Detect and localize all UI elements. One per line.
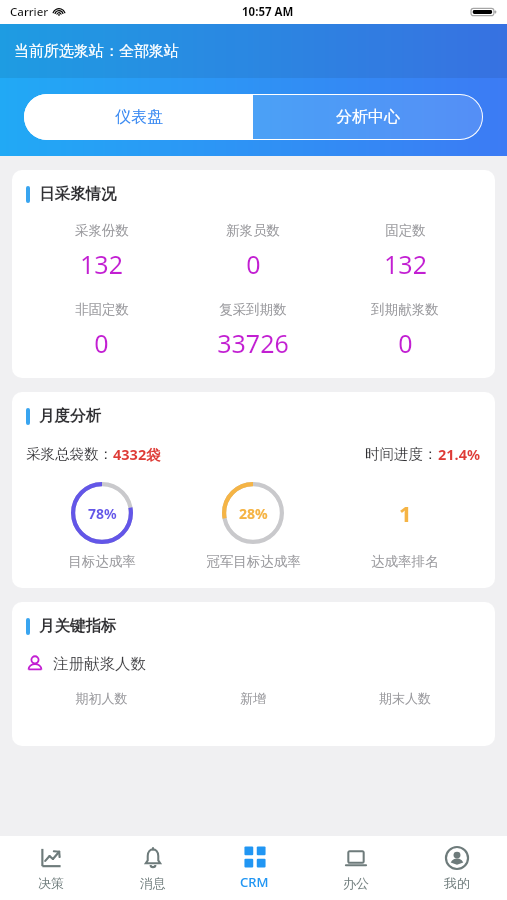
staticText: 仪表盘 [115,107,163,127]
staticText: 办公 [343,875,369,891]
staticText: Carrier [10,4,49,20]
staticText: 132 [80,247,123,281]
staticText: 期末人数 [329,690,481,706]
button[interactable]: 仪表盘 [24,94,253,140]
staticText: 10:57 AM [242,4,294,20]
staticText: 0 [398,326,413,360]
staticText: 非固定数 [75,301,129,318]
staticText: 达成率排名 [371,553,439,570]
button[interactable]: 决策 [0,836,102,900]
staticText: 1 [399,498,412,528]
staticText: 消息 [140,875,166,891]
button[interactable]: 分析中心 [253,94,483,140]
staticText: 0 [246,247,261,281]
staticText: 采浆总袋数： [26,445,113,463]
staticText: 0 [94,326,109,360]
staticText: 月度分析 [39,406,101,426]
staticText: 采浆份数 [75,222,129,239]
staticText: 时间进度： [365,445,438,463]
staticText: 21.4% [438,444,481,464]
staticText: 决策 [38,875,64,891]
button[interactable]: CRM [204,836,305,900]
staticText: 注册献浆人数 [53,654,146,674]
staticText: 复采到期数 [219,301,287,318]
staticText: 当前所选浆站：全部浆站 [14,42,179,61]
staticText: 期初人数 [26,690,177,706]
staticText: 日采浆情况 [39,184,117,204]
button[interactable]: 办公 [305,836,406,900]
staticText: 新浆员数 [226,222,280,239]
staticText: 月关键指标 [39,616,117,636]
staticText: 28% [239,504,268,523]
staticText: 分析中心 [336,107,400,127]
staticText: 新增 [177,690,329,706]
staticText: 固定数 [385,222,426,239]
staticText: 目标达成率 [68,553,136,570]
staticText: 132 [384,247,427,281]
staticText: 78% [88,504,117,523]
staticText: 33726 [217,326,289,360]
button[interactable]: 我的 [406,836,507,900]
button[interactable]: 消息 [102,836,204,900]
staticText: 4332袋 [113,444,161,464]
staticText: CRM [240,873,269,891]
staticText: 我的 [444,875,470,891]
staticText: 冠军目标达成率 [206,553,301,570]
staticText: 到期献浆数 [371,301,439,318]
